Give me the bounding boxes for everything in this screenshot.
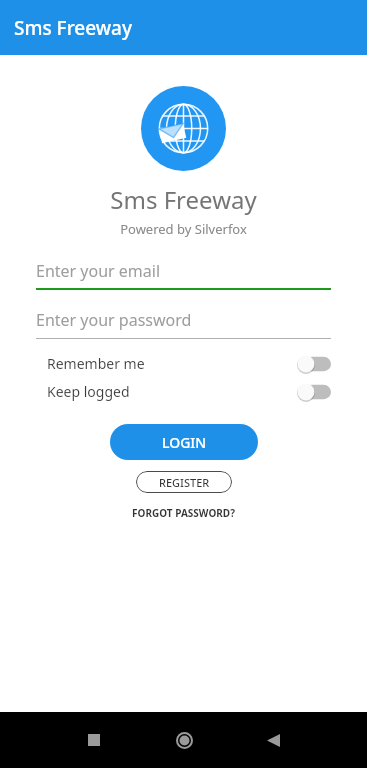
button[interactable]: Back [251,718,295,762]
button[interactable]: Enter your email [36,260,331,290]
button[interactable]: Recent apps [72,718,116,762]
button[interactable]: FORGOT PASSWORD? [124,504,243,522]
button[interactable]: LOGIN [110,424,258,460]
staticText: Sms Freeway [14,15,132,41]
staticText: Enter your password [36,309,192,331]
staticText: Remember me [47,354,145,373]
button[interactable]: REGISTER [136,471,232,493]
staticText: Powered by Silverfox [120,220,247,238]
button[interactable]: Home [162,718,206,762]
staticText: Keep logged [47,382,130,401]
button[interactable]: Enter your password [36,309,331,339]
staticText: Sms Freeway [110,183,257,216]
staticText: FORGOT PASSWORD? [132,506,235,520]
button[interactable]: Remember me [36,353,331,374]
staticText: LOGIN [162,433,207,452]
button[interactable]: Keep logged [36,381,331,402]
staticText: REGISTER [159,475,210,490]
staticText: Enter your email [36,260,161,282]
